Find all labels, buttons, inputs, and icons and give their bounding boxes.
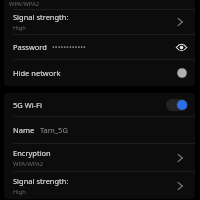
button[interactable]: Signal strength: bbox=[4, 172, 195, 199]
other: Hide network toggle bbox=[166, 67, 188, 79]
staticText: Hide network bbox=[13, 68, 61, 78]
staticText: Password bbox=[13, 42, 47, 52]
staticText: Signal strength: bbox=[13, 176, 69, 186]
staticText: WPA/WPA2 bbox=[13, 160, 44, 168]
staticText: 5G Wi-Fi bbox=[13, 100, 42, 110]
staticText: Name bbox=[13, 125, 35, 135]
other: Show password bbox=[175, 41, 188, 54]
staticText: High bbox=[13, 24, 26, 32]
staticText: Signal strength: bbox=[13, 12, 69, 22]
staticText: Encryption bbox=[13, 148, 51, 158]
staticText: Tam_5G bbox=[40, 125, 68, 135]
button[interactable]: WPA/WPA2 bbox=[4, 0, 195, 9]
staticText: •••••••••••• bbox=[52, 42, 86, 52]
other: Signal strength details bbox=[174, 179, 188, 193]
other: 5G Wi-Fi toggle bbox=[166, 99, 188, 111]
button[interactable]: 5G Wi-Fi bbox=[4, 93, 195, 116]
staticText: High bbox=[13, 188, 26, 196]
other: Signal strength details bbox=[174, 15, 188, 29]
button[interactable]: Name bbox=[4, 117, 195, 143]
staticText: WPA/WPA2 bbox=[9, 0, 40, 8]
button[interactable]: Password bbox=[4, 35, 195, 59]
other: Encryption details bbox=[174, 151, 188, 165]
button[interactable]: Hide network bbox=[4, 60, 195, 86]
button[interactable]: Encryption bbox=[4, 144, 195, 171]
button[interactable]: Signal strength: bbox=[4, 10, 195, 34]
